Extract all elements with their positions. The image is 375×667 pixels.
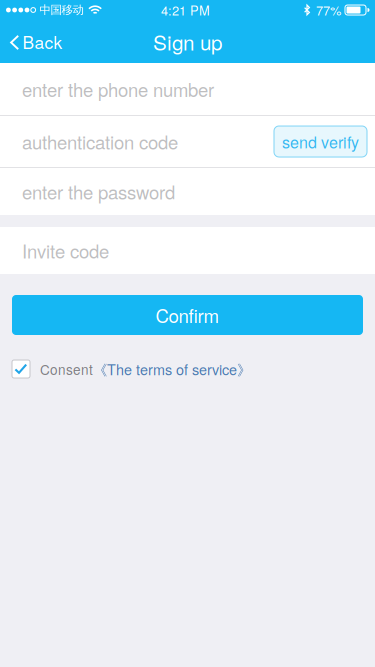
button[interactable]: Confirm [0,295,375,335]
staticText: Confirm [155,302,219,328]
staticText: Back [22,29,62,54]
button[interactable]: Back [0,20,74,63]
staticText: Invite code [22,237,109,264]
staticText: enter the password [22,178,175,205]
staticText: Sign up [153,27,222,56]
staticText: Consent [40,359,93,379]
button[interactable]: Consent [0,359,375,379]
staticText: 4:21 PM [161,1,210,19]
staticText: enter the phone number [22,76,214,102]
staticText: send verify [282,130,359,153]
staticText: 中国移动 [40,3,84,17]
staticText: authentication code [22,128,178,155]
staticText: 77% [316,1,341,19]
staticText: 《The terms of service》 [93,359,251,379]
button[interactable]: send verify [274,126,367,157]
